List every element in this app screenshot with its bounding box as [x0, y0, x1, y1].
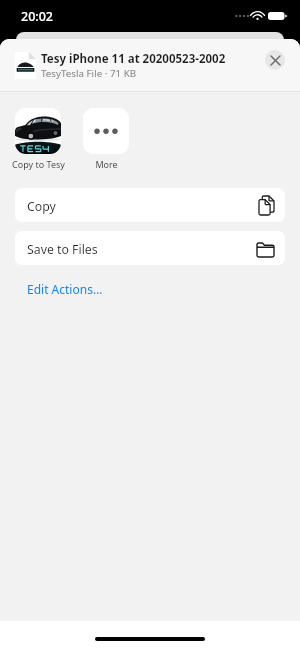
button[interactable]: Save to Files — [15, 231, 285, 265]
button[interactable]: Copy — [15, 188, 285, 222]
staticText: More — [95, 158, 118, 170]
staticText: 20:02 — [21, 8, 54, 25]
button[interactable]: Copy to Tesy — [7, 108, 69, 170]
staticText: Copy — [27, 198, 259, 215]
button[interactable]: Edit Actions… — [15, 280, 107, 300]
button[interactable]: Close — [265, 50, 285, 70]
staticText: Save to Files — [27, 241, 257, 258]
staticText: Tesy iPhone 11 at 20200523-2002 — [41, 51, 226, 67]
staticText: Edit Actions… — [27, 281, 103, 297]
staticText: Copy to Tesy — [12, 158, 65, 170]
staticText: TesyTesla File · 71 KB — [41, 67, 137, 80]
button[interactable]: More — [75, 108, 137, 170]
